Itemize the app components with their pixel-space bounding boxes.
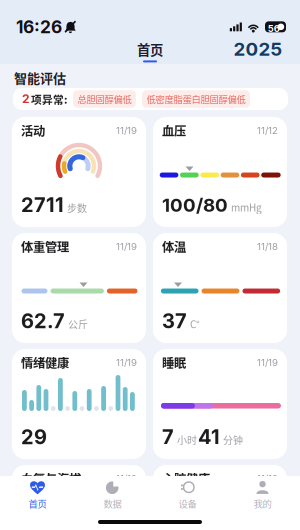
staticText: 血氧与海拔: [21, 470, 81, 487]
staticText: 11/19: [257, 357, 278, 368]
staticText: 总胆固醇偏低: [77, 92, 131, 106]
button[interactable]: 设备: [150, 479, 225, 511]
button[interactable]: 活动: [12, 117, 146, 227]
button[interactable]: 血压: [153, 117, 287, 227]
button[interactable]: 2025: [232, 39, 284, 59]
staticText: 11/18: [257, 241, 278, 252]
button[interactable]: 心脏健康: [153, 465, 287, 530]
button[interactable]: 体温: [153, 233, 287, 343]
staticText: 睡眠: [162, 354, 186, 371]
staticText: 活动: [21, 122, 45, 139]
staticText: 智能评估: [14, 68, 66, 87]
staticText: 公斤: [68, 317, 88, 331]
staticText: 41: [198, 425, 220, 449]
button[interactable]: 2: [13, 88, 288, 110]
staticText: 情绪健康: [21, 354, 69, 371]
staticText: 我的: [253, 497, 271, 510]
staticText: 项异常:: [31, 91, 67, 107]
staticText: 11/19: [116, 125, 137, 136]
staticText: 11/19: [116, 241, 137, 252]
button[interactable]: 首页: [0, 479, 75, 511]
button[interactable]: 睡眠: [153, 349, 287, 459]
staticText: 29: [21, 425, 47, 449]
staticText: mmHg: [231, 200, 262, 214]
staticText: 37: [162, 309, 187, 333]
staticText: 11/19: [257, 473, 278, 484]
staticText: 分钟: [223, 433, 243, 447]
staticText: 100/80: [162, 194, 228, 216]
button[interactable]: 情绪健康: [12, 349, 146, 459]
staticText: 数据: [103, 497, 121, 510]
staticText: 体重管理: [21, 238, 69, 255]
staticText: 小时: [177, 433, 197, 447]
staticText: 62.7: [21, 309, 65, 333]
staticText: 低密度脂蛋白胆固醇偏低: [146, 92, 245, 106]
staticText: 步数: [67, 201, 87, 215]
staticText: 11/12: [257, 125, 278, 136]
staticText: 11/19: [116, 473, 137, 484]
button[interactable]: 我的: [225, 479, 300, 511]
staticText: 16:26: [16, 16, 62, 37]
staticText: 2: [22, 92, 30, 106]
staticText: 7: [162, 425, 174, 449]
staticText: 2711: [21, 193, 64, 217]
button[interactable]: 体重管理: [12, 233, 146, 343]
button[interactable]: 血氧与海拔: [12, 465, 146, 530]
staticText: 设备: [178, 497, 196, 510]
staticText: 首页: [28, 497, 46, 510]
staticText: 血压: [162, 122, 186, 139]
staticText: 2025: [233, 38, 282, 60]
staticText: 心脏健康: [162, 470, 210, 487]
staticText: C°: [190, 317, 200, 331]
staticText: 首页: [137, 40, 163, 59]
button[interactable]: 首页: [127, 40, 173, 62]
button[interactable]: 数据: [75, 479, 150, 511]
staticText: 11/19: [116, 357, 137, 368]
staticText: 56: [268, 23, 280, 34]
staticText: 体温: [162, 238, 186, 255]
